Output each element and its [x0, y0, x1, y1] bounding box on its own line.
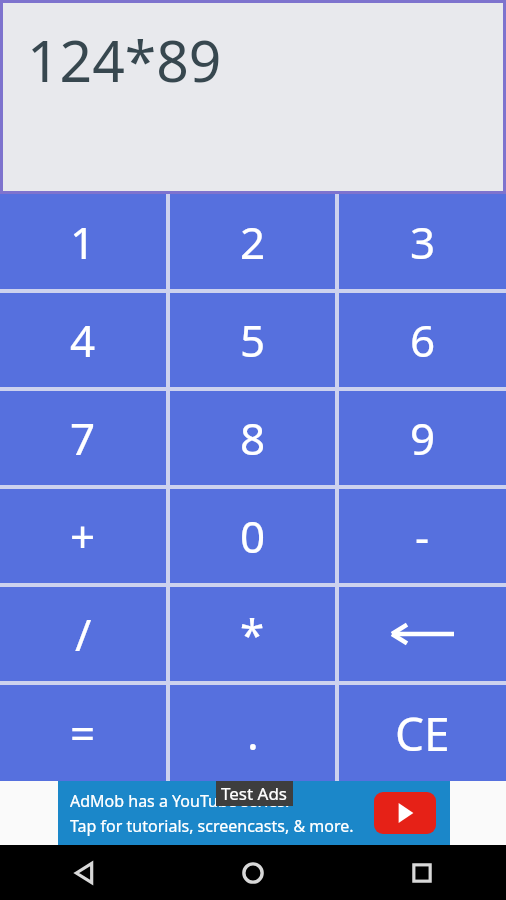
button[interactable]: . [170, 685, 335, 781]
button[interactable]: CE [339, 685, 506, 781]
button[interactable]: 8 [170, 391, 335, 485]
button[interactable]: AdMob has a YouTube series! [58, 781, 450, 845]
button[interactable]: * [170, 587, 335, 681]
button[interactable]: Home [168, 845, 337, 900]
staticText: Test Ads [221, 782, 288, 805]
button[interactable]: 5 [170, 293, 335, 387]
staticText: 0 [240, 506, 266, 566]
staticText: 9 [410, 408, 436, 468]
button[interactable]: 7 [0, 391, 166, 485]
button[interactable]: - [339, 489, 506, 583]
staticText: - [415, 506, 430, 566]
staticText: + [70, 506, 96, 566]
button[interactable]: 9 [339, 391, 506, 485]
staticText: 1 [70, 212, 96, 272]
staticText: 3 [410, 212, 436, 272]
button[interactable]: + [0, 489, 166, 583]
button[interactable]: / [0, 587, 166, 681]
button[interactable]: = [0, 685, 166, 781]
button[interactable]: 1 [0, 194, 166, 289]
button[interactable]: 3 [339, 194, 506, 289]
button[interactable]: 4 [0, 293, 166, 387]
staticText: Tap for tutorials, screencasts, & more. [70, 815, 354, 837]
staticText: AdMob has a YouTube series! [70, 790, 290, 812]
button[interactable]: Play video [374, 792, 436, 834]
button[interactable]: 2 [170, 194, 335, 289]
button[interactable]: 6 [339, 293, 506, 387]
button[interactable]: Recent apps [337, 845, 506, 900]
staticText: 2 [240, 212, 266, 272]
button[interactable]: 124*89 [3, 3, 503, 191]
staticText: 4 [70, 310, 96, 370]
staticText: 6 [410, 310, 436, 370]
button[interactable]: 0 [170, 489, 335, 583]
staticText: = [70, 703, 96, 763]
staticText: / [75, 604, 92, 664]
staticText: 8 [240, 408, 266, 468]
staticText: 124*89 [27, 21, 222, 99]
staticText: * [240, 604, 265, 664]
staticText: CE [395, 702, 450, 765]
button[interactable]: Back [0, 845, 168, 900]
staticText: 7 [70, 408, 96, 468]
staticText: 5 [240, 310, 266, 370]
button[interactable]: Backspace [339, 587, 506, 681]
staticText: . [247, 703, 259, 763]
